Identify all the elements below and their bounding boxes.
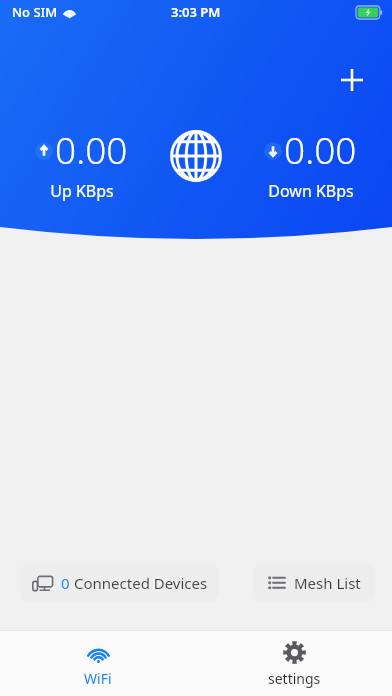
staticText: Down KBps bbox=[268, 180, 354, 202]
staticText: 3:03 PM bbox=[171, 3, 221, 21]
staticText: 0.00 bbox=[55, 124, 128, 174]
staticText: 0 bbox=[61, 573, 70, 593]
button[interactable]: settings bbox=[196, 631, 392, 696]
staticText: Mesh List bbox=[294, 573, 361, 593]
staticText: settings bbox=[268, 669, 321, 688]
button[interactable]: WiFi bbox=[0, 631, 196, 696]
button[interactable]: Mesh List bbox=[253, 564, 375, 602]
button[interactable]: Add bbox=[330, 58, 374, 102]
staticText: 0.00 bbox=[284, 124, 357, 174]
staticText: Connected Devices bbox=[74, 573, 208, 593]
staticText: No SIM bbox=[12, 3, 58, 21]
staticText: WiFi bbox=[84, 669, 112, 688]
staticText: Up KBps bbox=[50, 180, 114, 202]
button[interactable]: 0 bbox=[20, 564, 219, 602]
